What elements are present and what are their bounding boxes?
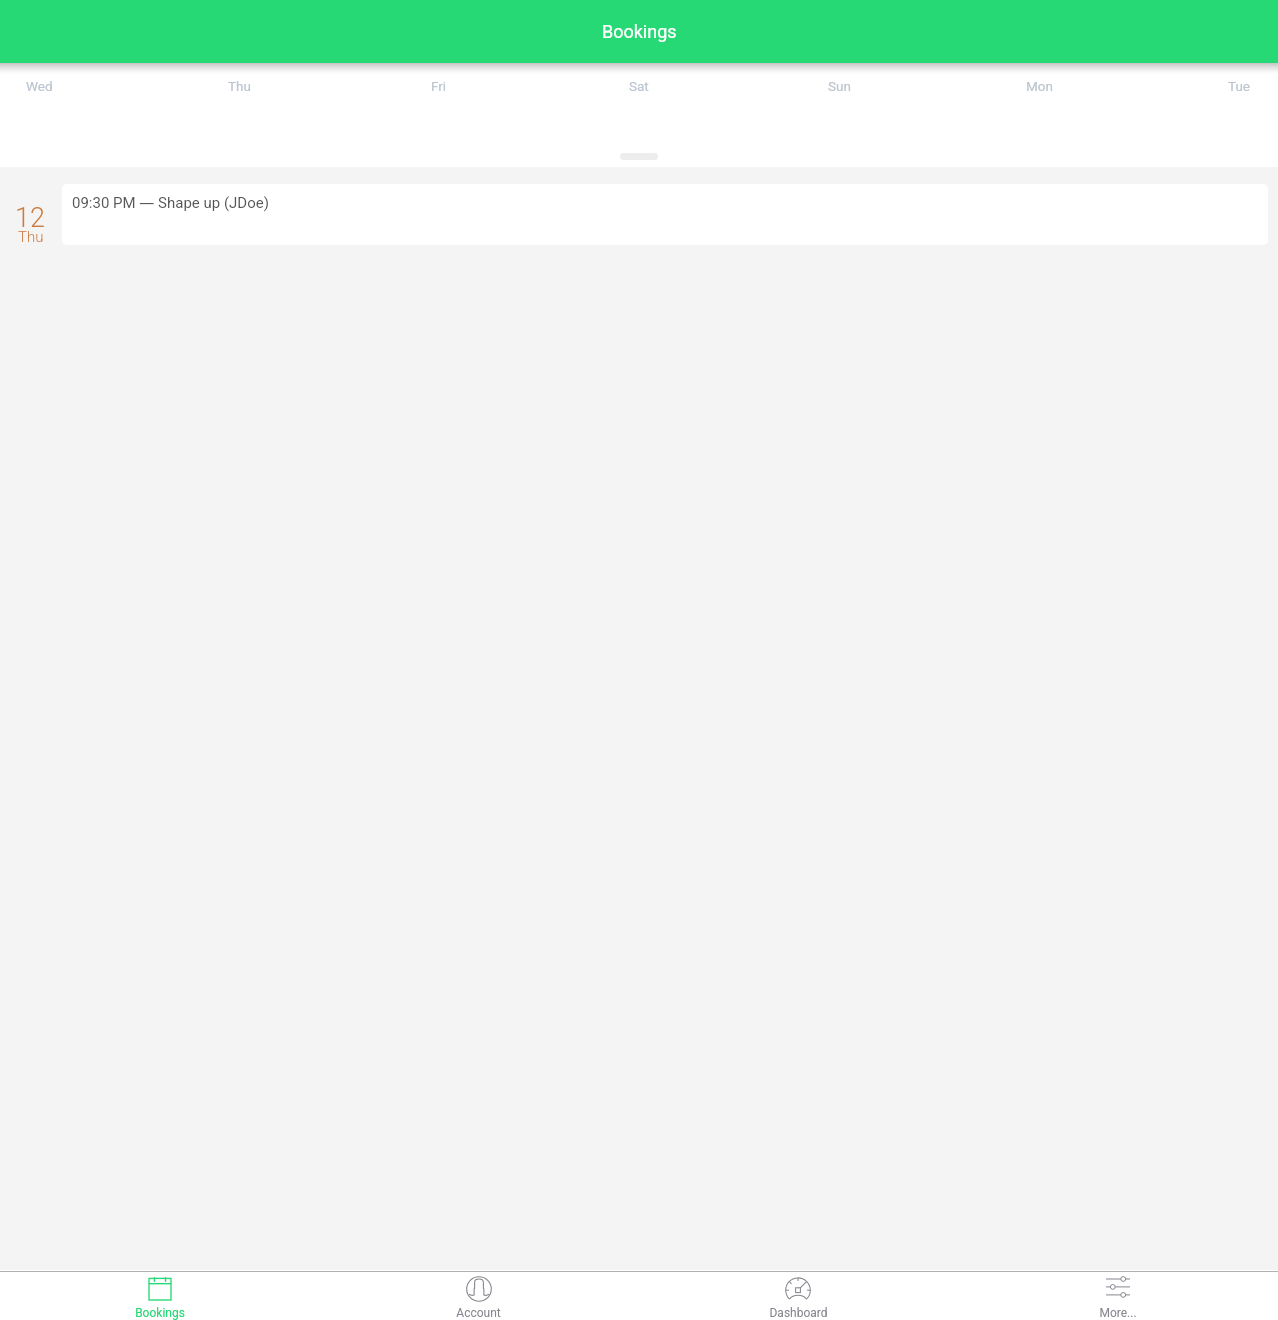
staticText: Tue	[1228, 78, 1251, 94]
staticText: Account	[456, 1306, 501, 1320]
staticText: 09:30 PM — Shape up (JDoe)	[72, 192, 269, 212]
staticText: Wed	[26, 78, 53, 94]
button[interactable]: Sat	[539, 70, 739, 102]
button[interactable]: Tue	[1139, 70, 1278, 102]
button[interactable]: Bookings	[0, 1270, 319, 1320]
staticText: 12	[15, 202, 45, 234]
staticText: Thu	[228, 78, 251, 94]
button[interactable]: Account	[319, 1270, 638, 1320]
button[interactable]: Thu	[139, 70, 339, 102]
staticText: Bookings	[135, 1306, 185, 1320]
button[interactable]: Wed	[0, 70, 139, 102]
staticText: Fri	[431, 78, 447, 94]
staticText: Mon	[1026, 78, 1053, 94]
button[interactable]: Mon	[939, 70, 1139, 102]
staticText: More...	[1099, 1306, 1137, 1320]
button[interactable]: More...	[958, 1270, 1278, 1320]
staticText: Sat	[629, 78, 649, 94]
button[interactable]: Sun	[739, 70, 939, 102]
staticText: Bookings	[602, 21, 677, 42]
button[interactable]: Fri	[339, 70, 539, 102]
button[interactable]: 12	[0, 184, 1278, 245]
button[interactable]: Dashboard	[638, 1270, 958, 1320]
staticText: Dashboard	[769, 1306, 828, 1320]
staticText: Thu	[18, 228, 44, 246]
staticText: Sun	[828, 78, 851, 94]
